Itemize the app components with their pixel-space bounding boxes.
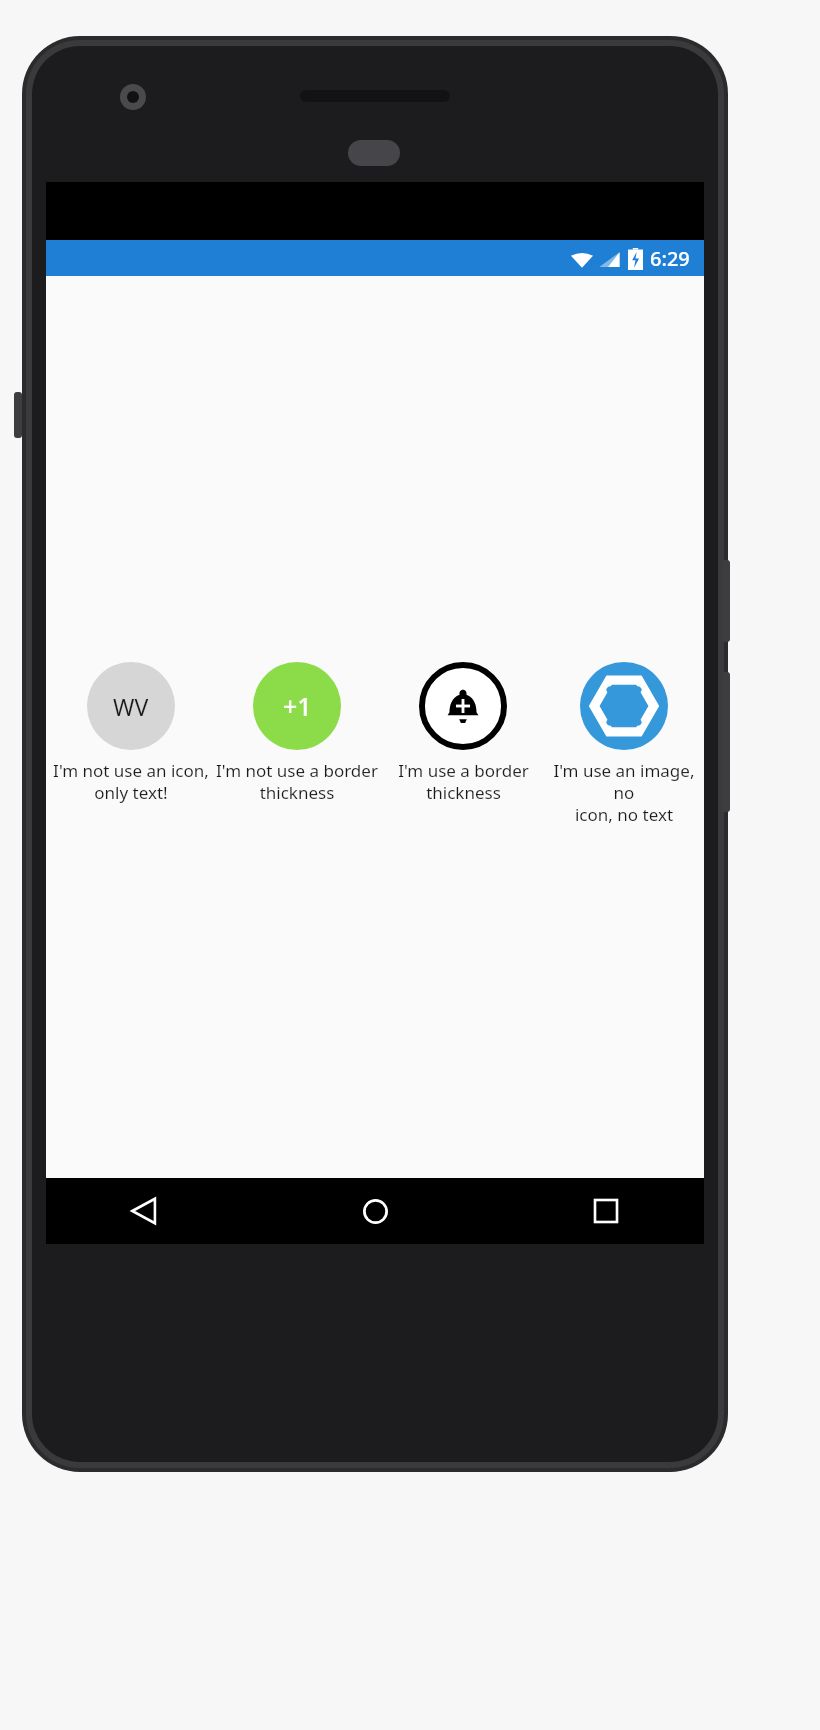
button[interactable]: Recent apps <box>578 1183 634 1239</box>
staticText: +1 <box>283 689 312 723</box>
staticText: I'm not use a border thickness <box>216 759 378 804</box>
button[interactable]: Back <box>116 1183 172 1239</box>
button[interactable]: WV <box>48 662 214 804</box>
staticText: 6:29 <box>650 245 690 272</box>
button[interactable]: +1 <box>214 662 380 804</box>
staticText: I'm use a border thickness <box>398 759 529 804</box>
button[interactable]: Home <box>347 1183 403 1239</box>
staticText: WV <box>113 691 149 722</box>
staticText: I'm use an image, no icon, no text <box>546 759 702 826</box>
button[interactable]: Xamarin logo <box>546 662 702 826</box>
button[interactable]: Add notification <box>380 662 546 804</box>
staticText: I'm not use an icon, only text! <box>53 759 209 804</box>
